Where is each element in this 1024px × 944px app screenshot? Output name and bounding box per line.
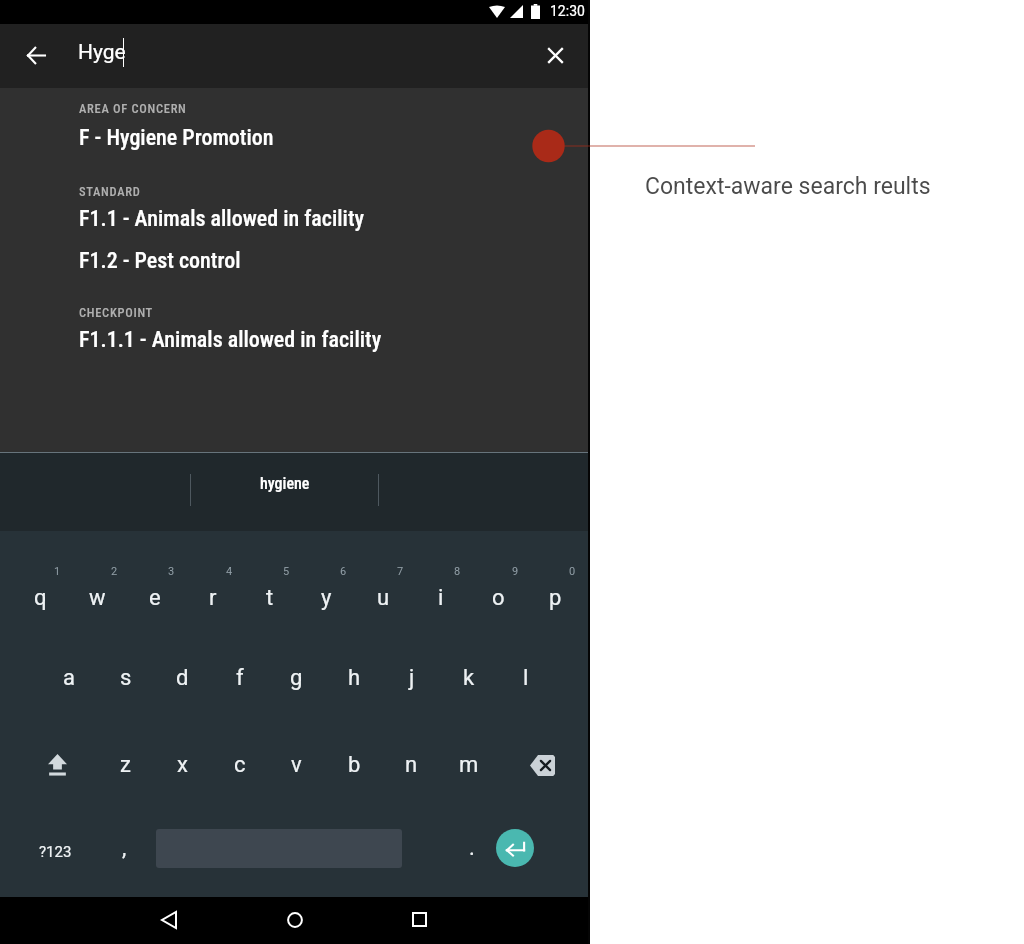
staticText: hygiene — [260, 474, 310, 493]
staticText: y — [321, 585, 332, 611]
button[interactable]: n — [383, 722, 440, 808]
staticText: 1 — [54, 565, 61, 578]
staticText: 7 — [397, 565, 404, 578]
button[interactable]: d — [154, 635, 211, 721]
staticText: r — [209, 585, 217, 611]
staticText: Hyge — [78, 40, 126, 65]
staticText: AREA OF CONCERN — [79, 101, 187, 116]
button[interactable]: b — [326, 722, 383, 808]
staticText: i — [438, 585, 444, 611]
staticText: ?123 — [39, 843, 72, 861]
staticText: h — [348, 665, 361, 691]
button[interactable]: Recent apps — [395, 896, 443, 943]
button[interactable]: Back — [14, 33, 58, 77]
staticText: t — [266, 585, 274, 611]
button[interactable]: Enter — [496, 829, 534, 867]
button[interactable]: Clear search — [533, 33, 577, 77]
button[interactable]: o — [469, 552, 526, 638]
button[interactable]: s — [97, 635, 154, 721]
staticText: 4 — [226, 565, 233, 578]
button[interactable]: v — [268, 722, 325, 808]
staticText: m — [459, 752, 479, 778]
staticText: Context-aware search reults — [645, 173, 931, 200]
staticText: c — [234, 752, 246, 778]
button[interactable]: w — [68, 552, 125, 638]
button[interactable]: k — [440, 635, 497, 721]
staticText: 9 — [512, 565, 519, 578]
button[interactable]: Home — [271, 896, 319, 943]
staticText: k — [463, 665, 475, 691]
button[interactable]: a — [40, 635, 97, 721]
staticText: n — [405, 752, 418, 778]
button[interactable]: Period — [446, 805, 498, 891]
staticText: f — [236, 665, 244, 691]
staticText: q — [34, 585, 47, 611]
staticText: . — [469, 835, 475, 861]
staticText: x — [177, 752, 188, 778]
button[interactable]: Comma — [98, 805, 150, 891]
button[interactable]: t — [240, 552, 297, 638]
staticText: s — [120, 665, 132, 691]
staticText: u — [377, 585, 390, 611]
staticText: 6 — [340, 565, 347, 578]
button[interactable]: F1.1 - Animals allowed in facility — [0, 206, 588, 236]
staticText: 12:30 — [550, 3, 585, 19]
staticText: CHECKPOINT — [79, 305, 153, 320]
staticText: 0 — [569, 565, 576, 578]
button[interactable]: q — [11, 552, 68, 638]
button[interactable]: F - Hygiene Promotion — [0, 125, 588, 155]
button[interactable]: h — [326, 635, 383, 721]
staticText: STANDARD — [79, 184, 141, 199]
staticText: d — [176, 665, 189, 691]
staticText: 3 — [168, 565, 175, 578]
button[interactable]: r — [183, 552, 240, 638]
staticText: l — [523, 665, 529, 691]
button[interactable]: Backspace — [498, 722, 586, 808]
staticText: 2 — [111, 565, 118, 578]
staticText: z — [120, 752, 131, 778]
staticText: F1.1.1 - Animals allowed in facility — [79, 327, 382, 353]
staticText: e — [149, 585, 161, 611]
staticText: F - Hygiene Promotion — [79, 125, 274, 151]
button[interactable]: f — [211, 635, 268, 721]
button[interactable]: Symbols — [9, 805, 101, 891]
button[interactable]: F1.2 - Pest control — [0, 248, 588, 278]
staticText: o — [492, 585, 505, 611]
staticText: a — [63, 665, 75, 691]
staticText: 5 — [283, 565, 290, 578]
button[interactable]: p — [526, 552, 583, 638]
button[interactable]: g — [268, 635, 325, 721]
button[interactable]: j — [383, 635, 440, 721]
button[interactable]: Back — [145, 896, 193, 943]
button[interactable]: z — [97, 722, 154, 808]
staticText: F1.1 - Animals allowed in facility — [79, 206, 365, 232]
button[interactable]: x — [154, 722, 211, 808]
staticText: 8 — [454, 565, 461, 578]
button[interactable]: hygiene — [191, 460, 378, 520]
button[interactable]: l — [497, 635, 554, 721]
button[interactable]: y — [297, 552, 354, 638]
staticText: v — [291, 752, 302, 778]
staticText: F1.2 - Pest control — [79, 248, 241, 274]
button[interactable]: u — [354, 552, 411, 638]
button[interactable]: Shift — [13, 722, 101, 808]
staticText: b — [348, 752, 361, 778]
staticText: w — [89, 585, 106, 611]
staticText: , — [122, 835, 127, 861]
button[interactable]: e — [125, 552, 182, 638]
button[interactable]: c — [211, 722, 268, 808]
staticText: p — [549, 585, 562, 611]
staticText: j — [409, 665, 415, 691]
staticText: g — [290, 665, 303, 691]
button[interactable]: F1.1.1 - Animals allowed in facility — [0, 327, 588, 357]
button[interactable]: i — [411, 552, 468, 638]
button[interactable]: m — [440, 722, 497, 808]
